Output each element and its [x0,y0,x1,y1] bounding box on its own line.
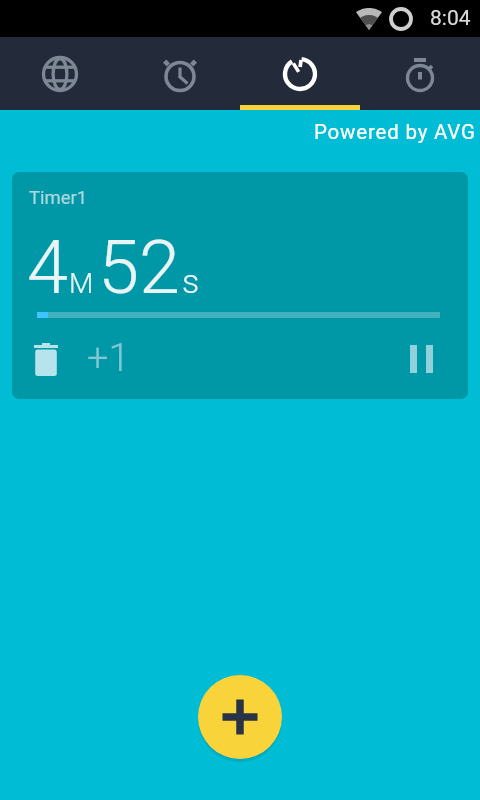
button[interactable] [34,343,58,376]
button[interactable] [120,37,240,110]
staticText: s [182,261,200,301]
staticText: 52 [98,224,181,311]
button[interactable] [0,37,120,110]
staticText: +1 [87,336,130,381]
button[interactable] [410,345,433,373]
staticText: Timer1 [29,187,88,209]
staticText: 8:04 [430,6,471,31]
button[interactable] [360,37,480,110]
button[interactable]: +1 [87,336,130,381]
button[interactable] [240,37,360,110]
staticText: Powered by AVG [314,120,476,144]
staticText: M [69,267,94,300]
staticText: 4 [27,224,69,311]
button[interactable] [198,675,282,759]
